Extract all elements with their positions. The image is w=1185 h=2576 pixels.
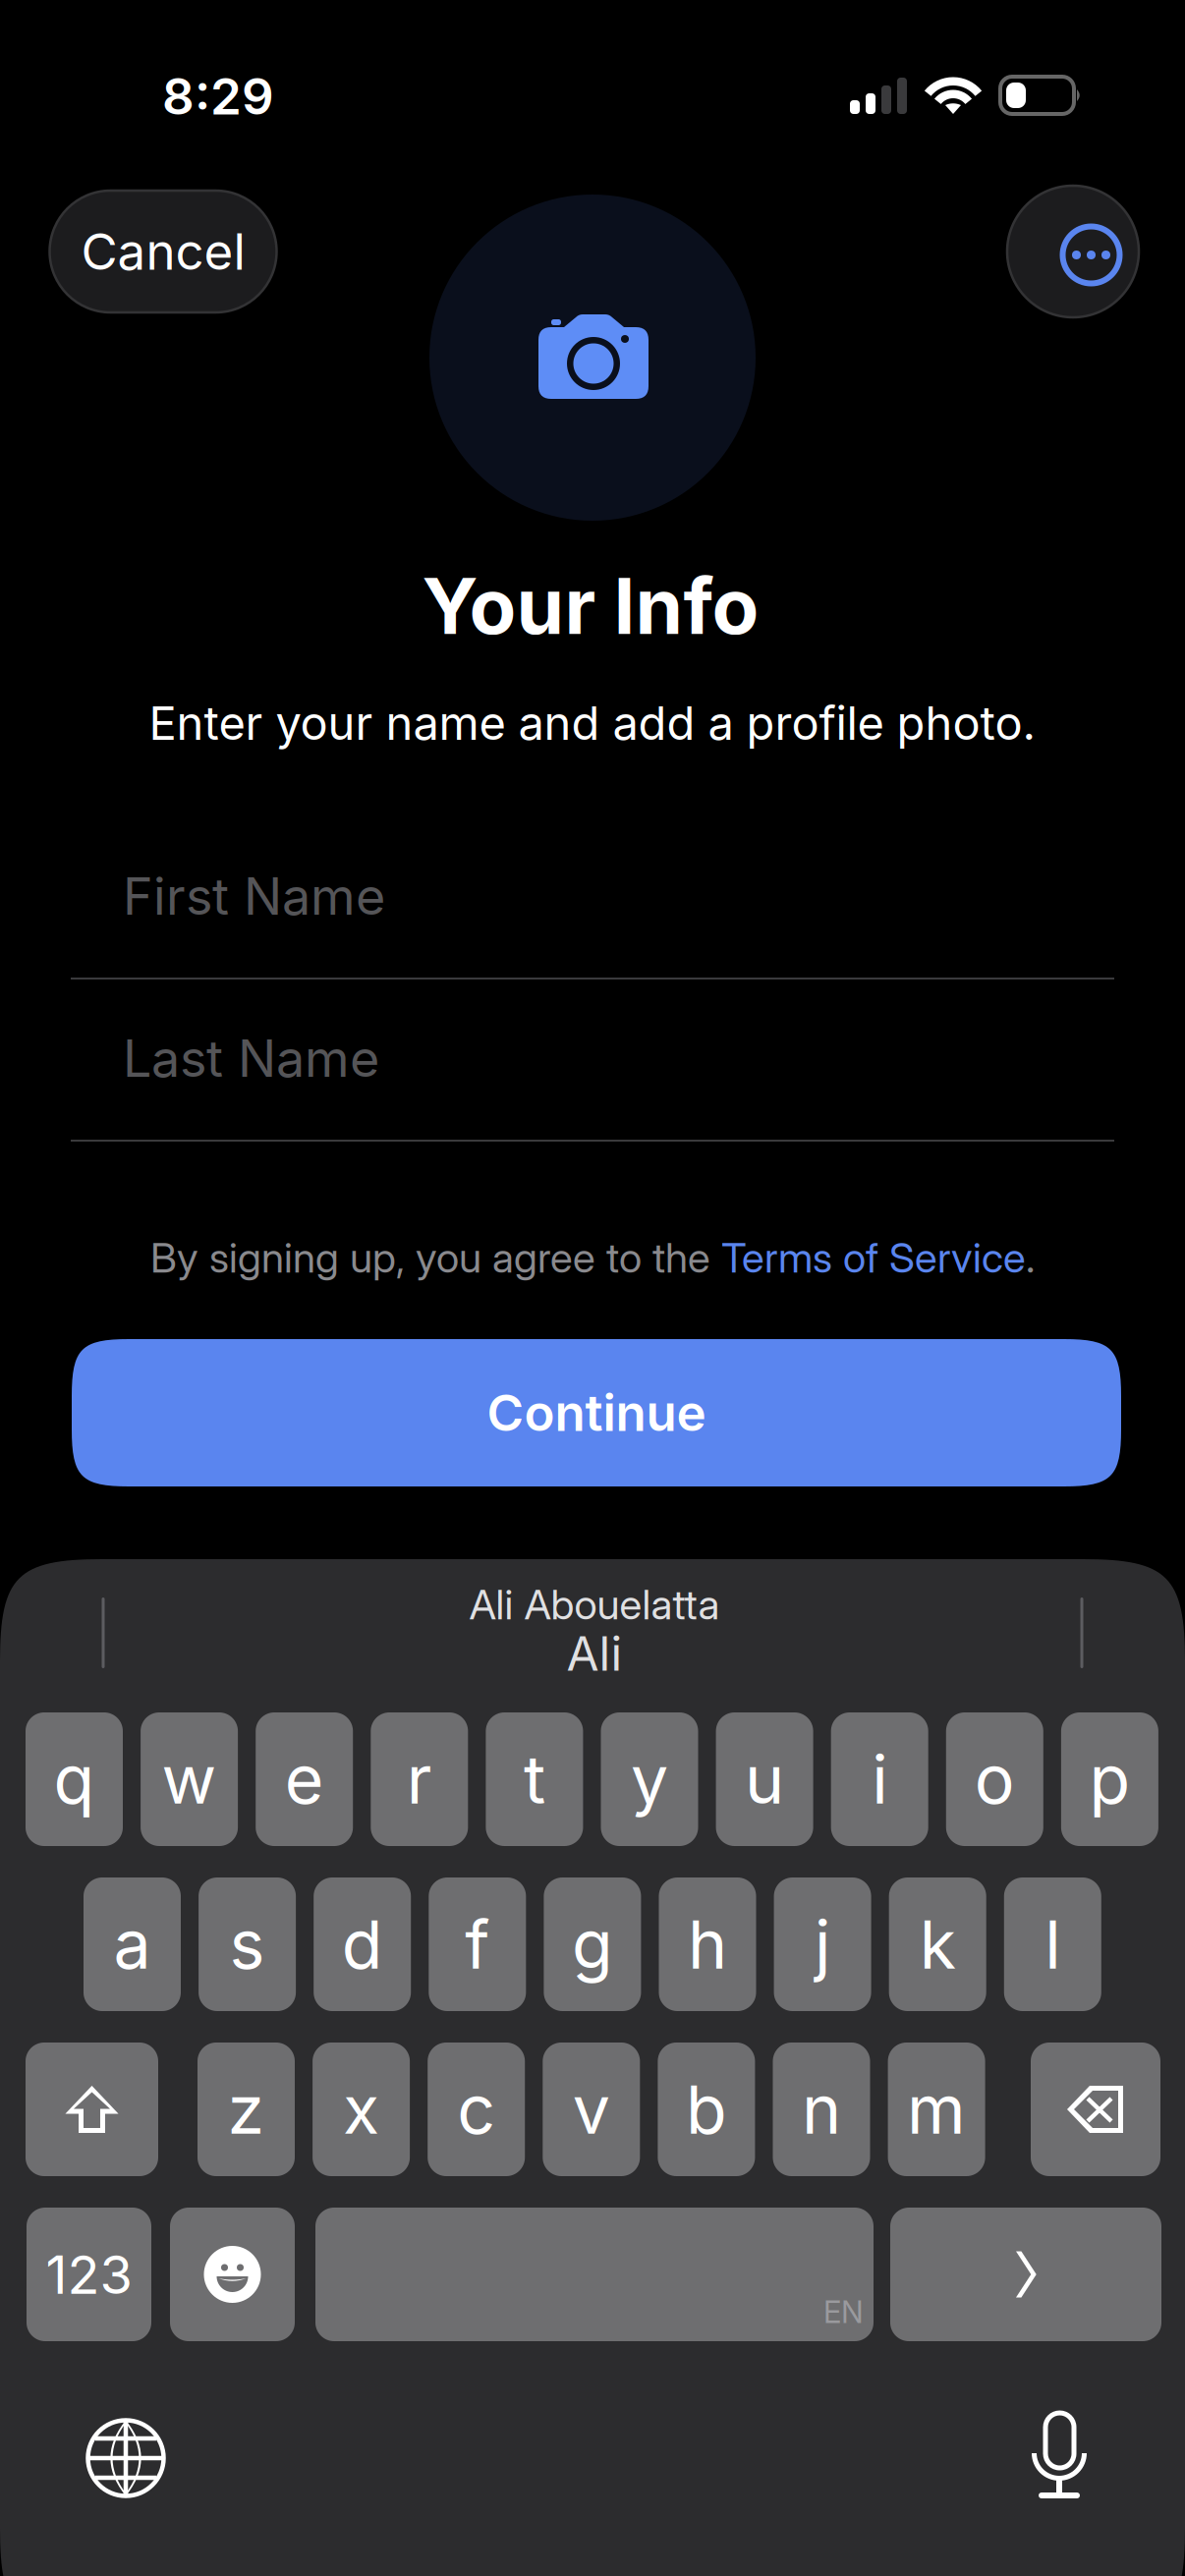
staticText: Terms of Service [721, 1233, 1026, 1282]
staticText: b [686, 2069, 727, 2150]
button[interactable]: k [889, 1877, 986, 2011]
button[interactable]: y [601, 1712, 698, 1846]
button[interactable]: Dictation [1032, 2413, 1089, 2499]
staticText: o [975, 1739, 1015, 1820]
button[interactable]: h [659, 1877, 756, 2011]
button[interactable]: r [371, 1712, 468, 1846]
staticText: k [919, 1904, 956, 1985]
button[interactable]: d [314, 1877, 411, 2011]
staticText: Your Info [422, 560, 759, 653]
button[interactable]: n [773, 2043, 870, 2176]
staticText: r [407, 1739, 432, 1820]
button[interactable]: m [888, 2043, 985, 2176]
staticText: Ali Abouelatta [469, 1579, 720, 1629]
staticText: h [688, 1904, 727, 1985]
button[interactable]: z [197, 2043, 295, 2176]
staticText: v [573, 2069, 610, 2150]
staticText: p [1089, 1739, 1130, 1820]
button[interactable]: More options [1007, 186, 1139, 317]
staticText: q [54, 1739, 95, 1820]
button[interactable]: v [543, 2043, 640, 2176]
staticText: i [872, 1739, 887, 1820]
button[interactable]: t [486, 1712, 583, 1846]
button[interactable]: Space [315, 2208, 874, 2341]
button[interactable]: c [428, 2043, 525, 2176]
staticText: s [230, 1904, 265, 1985]
button[interactable]: b [658, 2043, 755, 2176]
button[interactable]: s [199, 1877, 296, 2011]
staticText: g [572, 1904, 613, 1985]
staticText: m [907, 2069, 966, 2150]
button[interactable]: u [716, 1712, 813, 1846]
staticText: n [802, 2069, 841, 2150]
button[interactable]: Next [890, 2208, 1161, 2341]
staticText: t [524, 1739, 545, 1820]
button[interactable]: Delete [1031, 2043, 1160, 2176]
button[interactable]: e [256, 1712, 353, 1846]
button[interactable]: i [831, 1712, 928, 1846]
button[interactable]: Cancel [50, 191, 277, 312]
staticText: Ali [566, 1625, 622, 1682]
staticText: f [465, 1904, 490, 1985]
button[interactable]: g [544, 1877, 641, 2011]
staticText: y [631, 1739, 668, 1820]
button[interactable]: l [1004, 1877, 1101, 2011]
staticText: x [343, 2069, 379, 2150]
button[interactable]: a [84, 1877, 181, 2011]
button[interactable]: p [1061, 1712, 1158, 1846]
staticText: z [227, 2069, 265, 2150]
button[interactable]: Emoji [170, 2208, 295, 2341]
staticText: Enter your name and add a profile photo. [149, 695, 1036, 751]
staticText: c [457, 2069, 495, 2150]
button[interactable]: o [946, 1712, 1043, 1846]
button[interactable]: f [429, 1877, 526, 2011]
staticText: e [285, 1739, 324, 1820]
button[interactable]: Continue [72, 1339, 1121, 1486]
staticText: Continue [487, 1382, 706, 1443]
button[interactable]: Change keyboard [85, 2418, 166, 2498]
staticText: Cancel [81, 221, 245, 282]
staticText: l [1045, 1904, 1061, 1985]
button[interactable]: w [141, 1712, 238, 1846]
button[interactable]: Terms of Service [721, 1233, 1026, 1282]
staticText: u [745, 1739, 784, 1820]
staticText: 8:29 [162, 66, 274, 127]
staticText: . [1026, 1233, 1035, 1282]
button[interactable]: j [774, 1877, 871, 2011]
staticText: First Name [123, 865, 385, 927]
staticText: w [162, 1739, 217, 1820]
button[interactable]: Numbers [27, 2208, 151, 2341]
staticText: a [113, 1904, 151, 1985]
staticText: EN [823, 2294, 864, 2330]
staticText: By signing up, you agree to the [150, 1233, 721, 1282]
button[interactable]: x [313, 2043, 410, 2176]
staticText: 123 [46, 2242, 132, 2306]
button[interactable]: Shift [26, 2043, 158, 2176]
button[interactable]: q [26, 1712, 123, 1846]
button[interactable]: Add profile photo [429, 195, 756, 521]
staticText: d [342, 1904, 383, 1985]
staticText: j [815, 1904, 830, 1985]
staticText: Last Name [123, 1027, 379, 1089]
